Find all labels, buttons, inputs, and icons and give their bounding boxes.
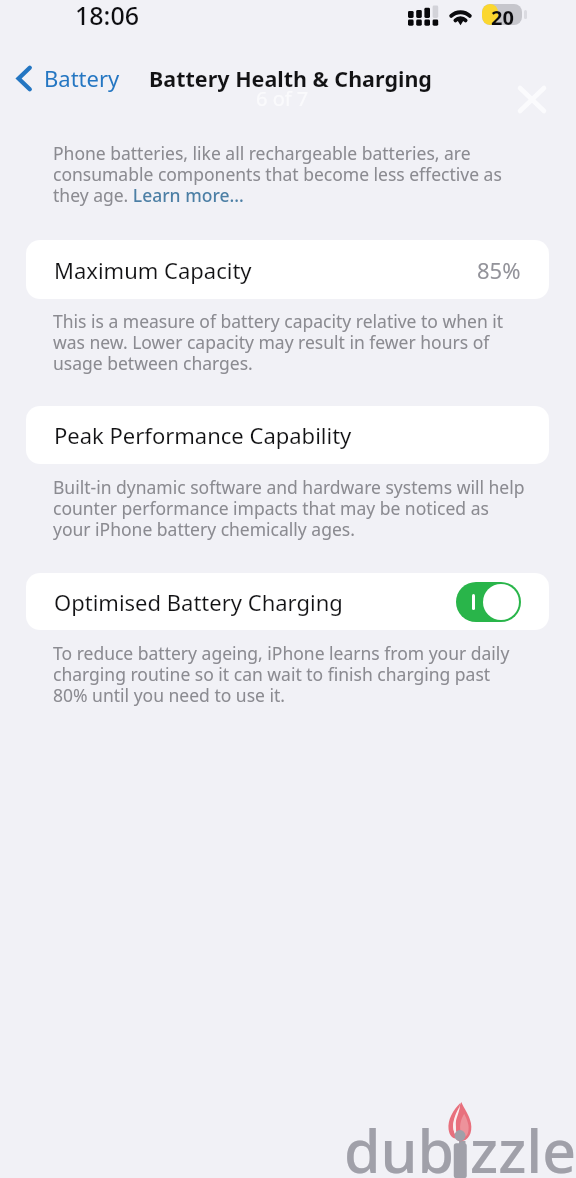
button[interactable]: Close (510, 77, 554, 121)
staticText: 6 of 7 (256, 85, 309, 112)
staticText: 85% (477, 255, 521, 285)
staticText: Optimised Battery Charging (54, 587, 343, 617)
button[interactable]: Optimised Battery Charging (456, 582, 521, 622)
staticText: Peak Performance Capability (54, 420, 352, 450)
button[interactable]: Learn more (132, 185, 244, 207)
button[interactable]: Optimised Battery Charging (26, 573, 549, 630)
staticText: This is a measure of battery capacity re… (53, 309, 504, 375)
staticText: Maximum Capacity (54, 255, 252, 285)
staticText: Built-in dynamic software and hardware s… (53, 475, 525, 541)
staticText: Battery Health & Charging (149, 64, 432, 93)
button[interactable]: Peak Performance Capability (26, 406, 549, 464)
staticText: Phone batteries, like all rechargeable b… (53, 141, 502, 207)
staticText: 20 (491, 4, 514, 25)
staticText: To reduce battery ageing, iPhone learns … (53, 641, 510, 707)
staticText: Battery (44, 63, 120, 93)
button[interactable]: Maximum Capacity (26, 240, 549, 299)
button[interactable]: Battery (12, 60, 124, 96)
staticText: dubizzle (344, 1110, 576, 1178)
staticText: 18:06 (75, 0, 140, 32)
